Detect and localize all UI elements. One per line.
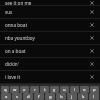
button[interactable]: g [45, 93, 55, 100]
button[interactable]: q [1, 86, 9, 93]
button[interactable]: t [40, 86, 49, 93]
staticText: e [23, 87, 26, 93]
button[interactable]: dickin' [0, 58, 100, 70]
staticText: q [4, 87, 7, 93]
button[interactable]: onna boat [0, 19, 100, 31]
button[interactable]: see it on me [0, 0, 100, 6]
button[interactable]: nba yountboy [0, 32, 100, 44]
staticText: s [16, 94, 19, 100]
button[interactable]: o [80, 86, 89, 93]
staticText: h [60, 94, 63, 100]
staticText: y [53, 87, 56, 93]
button[interactable]: i [70, 86, 79, 93]
staticText: see it on me [5, 0, 87, 6]
staticText: on a boat [5, 48, 87, 54]
button[interactable]: Remove on a boat from history [87, 46, 97, 56]
button[interactable]: l [89, 93, 99, 100]
button[interactable]: d [23, 93, 33, 100]
button[interactable]: u [60, 86, 69, 93]
staticText: d [27, 94, 30, 100]
button[interactable]: Remove nba yountboy from history [87, 33, 97, 43]
button[interactable]: e [20, 86, 29, 93]
button[interactable]: Remove dickin' from history [87, 59, 97, 69]
button[interactable]: a [1, 93, 11, 100]
staticText: dickin' [5, 61, 87, 67]
staticText: nba yountboy [5, 35, 87, 41]
staticText: f [38, 94, 40, 100]
button[interactable]: r [30, 86, 39, 93]
button[interactable]: y [50, 86, 59, 93]
staticText: w [13, 87, 17, 93]
button[interactable]: Remove onna boat from history [87, 20, 97, 30]
button[interactable]: on a boat [0, 45, 100, 57]
staticText: onna boat [5, 22, 87, 28]
button[interactable]: f [34, 93, 44, 100]
button[interactable]: w [10, 86, 19, 93]
button[interactable]: i love it [0, 71, 100, 83]
button[interactable]: sus [0, 6, 100, 18]
staticText: j [71, 94, 73, 100]
staticText: i love it [5, 74, 87, 80]
button[interactable]: s [12, 93, 22, 100]
button[interactable]: k [78, 93, 88, 100]
staticText: r [34, 87, 36, 93]
staticText: a [5, 94, 8, 100]
button[interactable]: p [90, 86, 99, 93]
button[interactable]: Remove i love it from history [87, 72, 97, 82]
button[interactable]: h [56, 93, 66, 100]
staticText: i [74, 87, 76, 93]
staticText: u [63, 87, 66, 93]
staticText: p [93, 87, 96, 93]
staticText: g [49, 94, 52, 100]
staticText: sus [5, 9, 87, 15]
button[interactable]: Remove sus from history [87, 7, 97, 17]
button[interactable]: j [67, 93, 77, 100]
staticText: k [82, 94, 85, 100]
staticText: l [93, 94, 95, 100]
other: Remove from history [87, 0, 97, 6]
staticText: t [44, 87, 46, 93]
staticText: o [83, 87, 86, 93]
